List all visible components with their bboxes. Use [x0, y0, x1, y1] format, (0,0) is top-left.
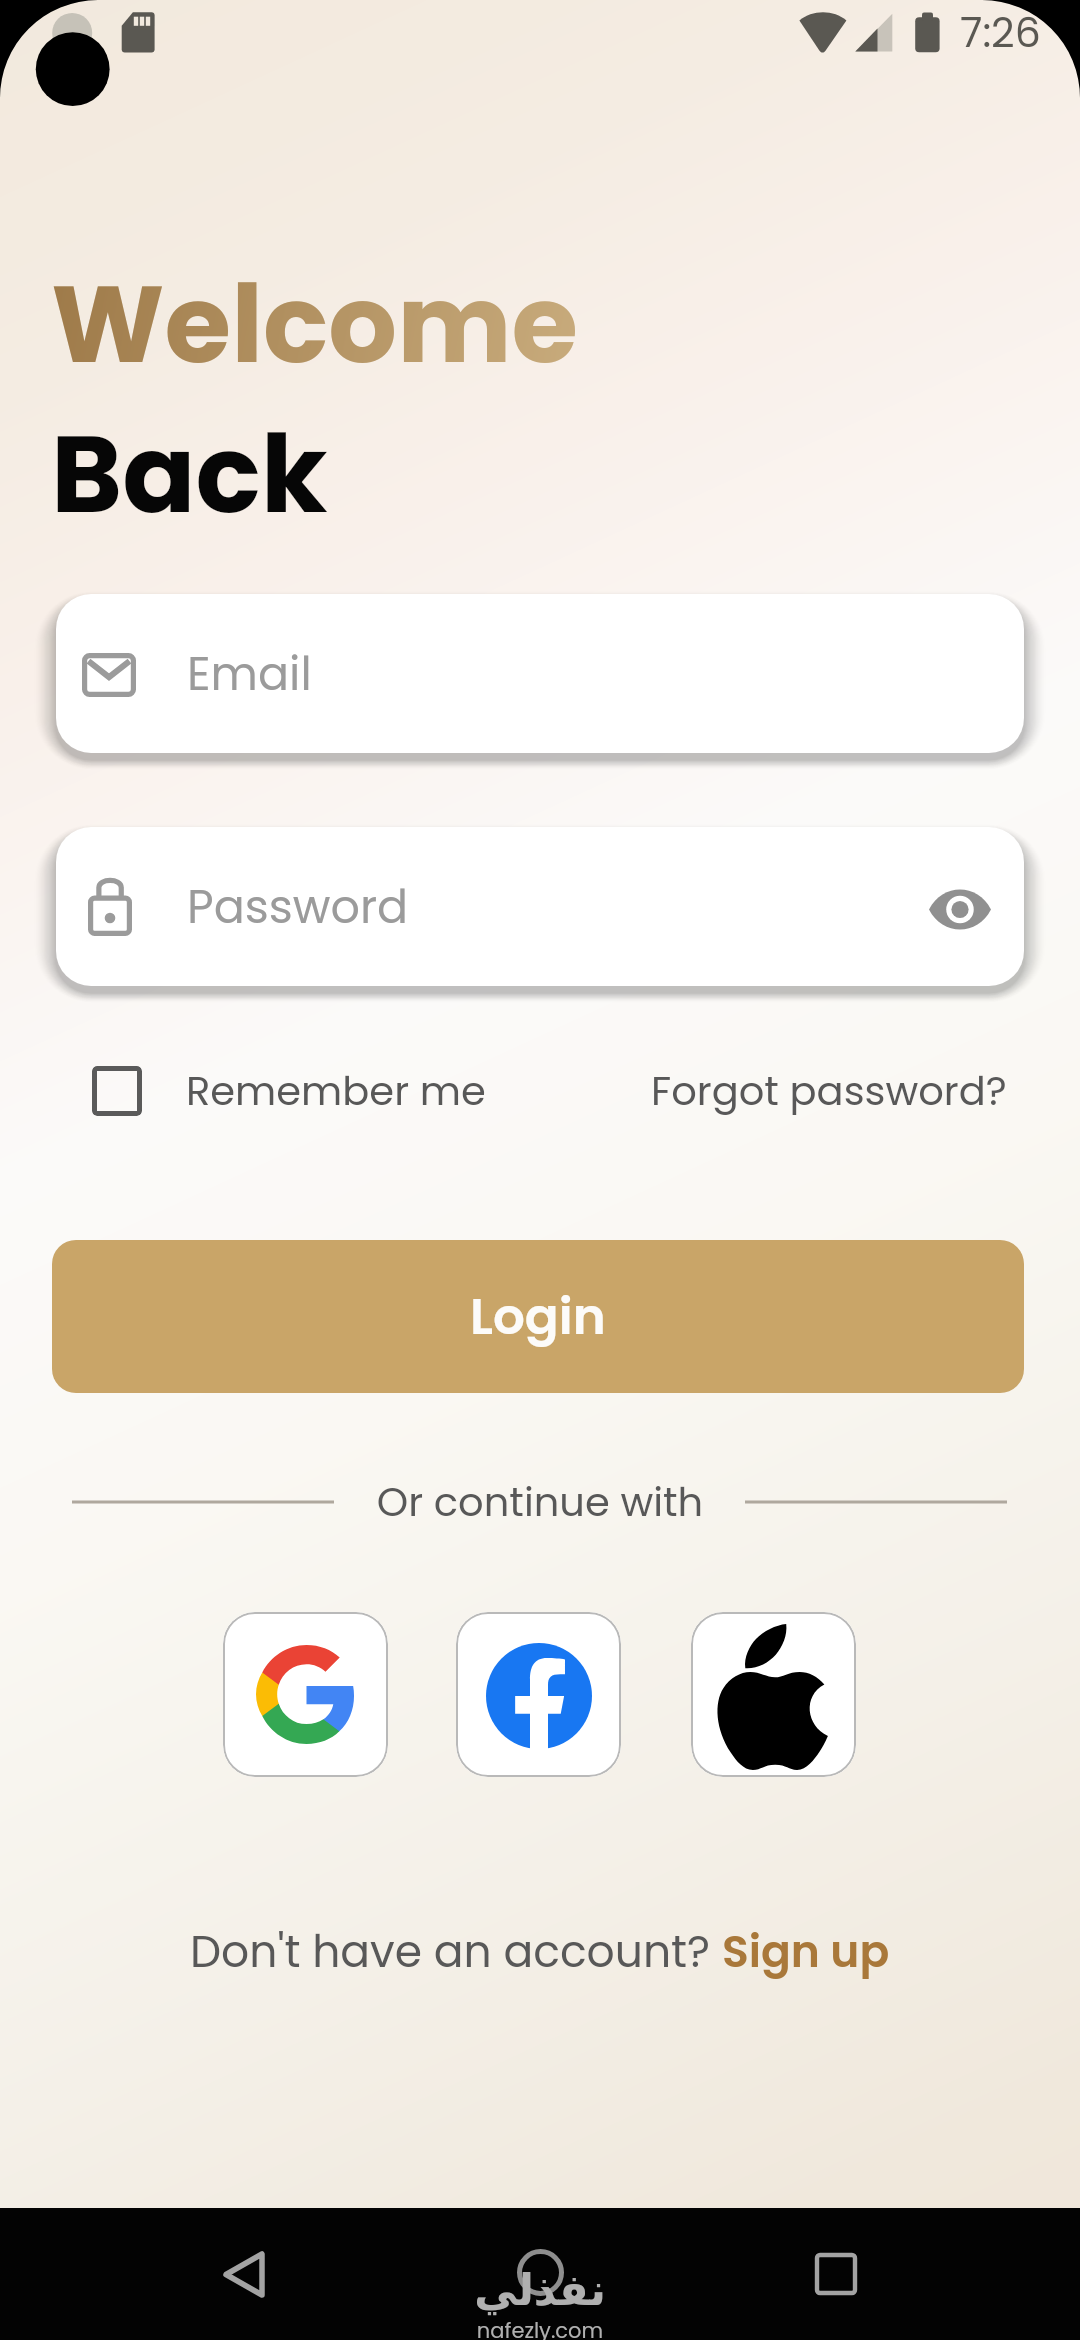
button[interactable]: Email: [56, 594, 1024, 753]
staticText: 7:26: [960, 4, 1041, 61]
button[interactable]: Sign in with Google: [223, 1612, 388, 1777]
button[interactable]: Forgot password?: [651, 1063, 1007, 1119]
staticText: Back: [51, 399, 328, 550]
staticText: Login: [470, 1282, 606, 1352]
staticText: nafezly.com: [0, 2316, 1080, 2340]
button[interactable]: Recent apps: [770, 2221, 902, 2327]
button[interactable]: Sign in with Facebook: [456, 1612, 621, 1777]
button[interactable]: Back: [178, 2221, 310, 2327]
staticText: Welcome: [51, 249, 579, 400]
button[interactable]: Show password: [917, 874, 1003, 944]
button[interactable]: Password: [56, 827, 1024, 986]
staticText: Forgot password?: [651, 1063, 1007, 1119]
staticText: Remember me: [186, 1063, 486, 1119]
button[interactable]: Login: [52, 1240, 1024, 1393]
button[interactable]: Sign in with Apple: [691, 1612, 856, 1777]
staticText: Or continue with: [0, 1474, 1080, 1530]
staticText: نفذلي: [0, 2265, 1080, 2315]
button[interactable]: Remember me: [92, 1063, 442, 1119]
button[interactable]: Home: [474, 2221, 606, 2327]
button[interactable]: Don't have an account? Sign up: [190, 1921, 890, 1983]
staticText: Email: [187, 642, 312, 706]
staticText: Password: [187, 875, 409, 939]
